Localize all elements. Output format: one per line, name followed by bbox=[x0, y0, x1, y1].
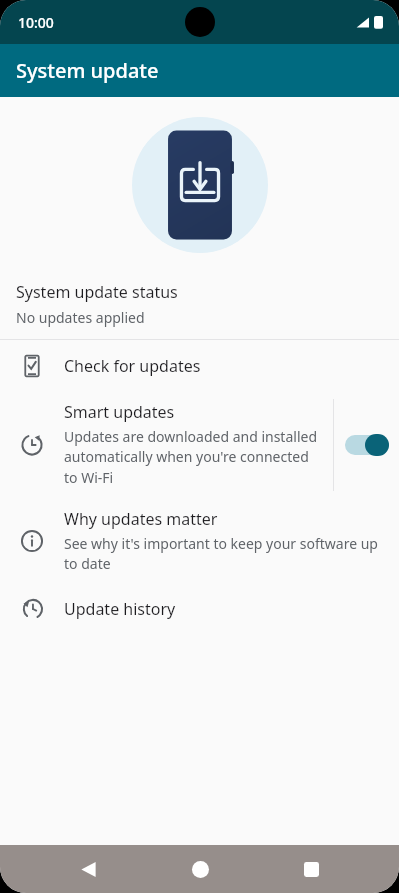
staticText: Updates are downloaded and installed aut… bbox=[64, 427, 321, 488]
button[interactable]: Update history bbox=[0, 585, 399, 633]
button[interactable]: Check for updates bbox=[0, 340, 399, 392]
button[interactable]: Home bbox=[176, 845, 224, 893]
staticText: Why updates matter bbox=[64, 508, 218, 530]
other: Why updates matter bbox=[20, 529, 44, 553]
staticText: 10:00 bbox=[18, 13, 54, 32]
staticText: Update history bbox=[64, 598, 176, 620]
staticText: System update bbox=[16, 57, 159, 84]
button[interactable]: System update status bbox=[0, 273, 399, 339]
staticText: System update status bbox=[16, 281, 178, 303]
staticText: No updates applied bbox=[16, 308, 145, 327]
staticText: Smart updates bbox=[64, 401, 175, 423]
other: Smart updates bbox=[20, 433, 44, 457]
button[interactable]: Back bbox=[64, 845, 112, 893]
other: Check for updates bbox=[20, 354, 44, 378]
staticText: See why it's important to keep your soft… bbox=[64, 534, 383, 574]
other: Update history bbox=[20, 597, 44, 621]
button[interactable]: Smart updates toggle bbox=[334, 392, 399, 497]
button[interactable]: Smart updates bbox=[0, 392, 399, 497]
button[interactable]: Recent apps bbox=[287, 845, 335, 893]
staticText: Check for updates bbox=[64, 355, 201, 377]
button[interactable]: Why updates matter bbox=[0, 497, 399, 585]
